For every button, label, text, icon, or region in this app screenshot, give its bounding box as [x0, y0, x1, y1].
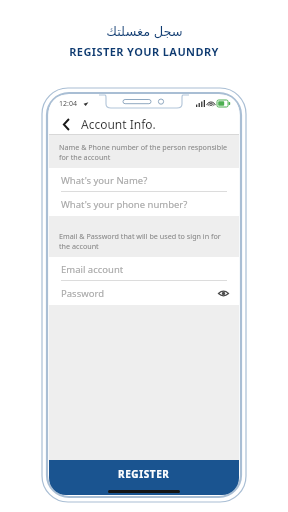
- staticText: What's your Name?: [61, 174, 148, 187]
- staticText: Name & Phone number of the person respon…: [59, 142, 229, 162]
- staticText: 12:04: [59, 99, 77, 109]
- button[interactable]: Show password: [216, 286, 230, 300]
- staticText: REGISTER YOUR LAUNDRY: [69, 44, 219, 59]
- staticText: Email account: [61, 263, 124, 276]
- button[interactable]: What's your phone number?: [49, 192, 239, 216]
- staticText: What's your phone number?: [61, 198, 188, 211]
- staticText: Password: [61, 287, 104, 300]
- staticText: REGISTER: [118, 467, 170, 481]
- staticText: Email & Password that will be used to si…: [59, 231, 229, 251]
- button[interactable]: Back: [58, 116, 74, 132]
- button[interactable]: Password: [49, 281, 239, 305]
- button[interactable]: Email account: [49, 257, 239, 281]
- staticText: Account Info.: [81, 116, 156, 132]
- button[interactable]: What's your Name?: [49, 168, 239, 192]
- staticText: سجل مغسلتك: [106, 22, 183, 40]
- button[interactable]: REGISTER: [49, 460, 239, 488]
